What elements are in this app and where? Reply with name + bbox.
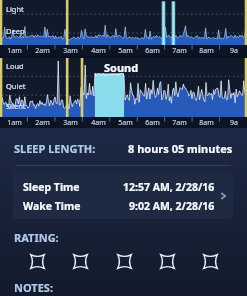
staticText: Silent	[6, 101, 26, 111]
staticText: 7am	[172, 118, 187, 128]
staticText: 3am	[63, 46, 78, 56]
staticText: 8am	[199, 118, 214, 128]
staticText: 6am	[145, 46, 160, 56]
button[interactable]: Rate 4 of 5	[156, 250, 178, 272]
staticText: 4am	[91, 118, 106, 128]
staticText: 8 hours 05 minutes	[128, 141, 233, 156]
staticText: Loud	[6, 61, 24, 71]
staticText: 7am	[172, 46, 187, 56]
button[interactable]: Rate 3 of 5	[113, 250, 135, 272]
staticText: 6am	[145, 118, 160, 128]
staticText: Light	[6, 4, 24, 14]
staticText: 2am	[35, 118, 50, 128]
button[interactable]: Rate 1 of 5	[26, 250, 48, 272]
staticText: 1am	[7, 118, 22, 128]
staticText: 5am	[118, 46, 133, 56]
staticText: 2am	[35, 46, 50, 56]
button[interactable]: Rate 2 of 5	[69, 250, 91, 272]
staticText: Sound	[104, 60, 139, 75]
staticText: 5am	[118, 118, 133, 128]
button[interactable]: Sleep Time	[13, 173, 233, 219]
staticText: NOTES:	[14, 280, 53, 295]
staticText: RATING:	[14, 230, 59, 245]
staticText: 1am	[7, 46, 22, 56]
staticText: 9a	[230, 118, 238, 128]
staticText: 12:57 AM, 2/28/16	[123, 180, 215, 194]
staticText: Quiet	[6, 81, 26, 91]
staticText: Sleep Time	[23, 180, 80, 194]
staticText: SLEEP LENGTH:	[14, 141, 96, 156]
button[interactable]: Rate 5 of 5	[199, 250, 221, 272]
staticText: Deep	[6, 26, 25, 36]
staticText: 3am	[63, 118, 78, 128]
staticText: Wake Time	[23, 199, 81, 213]
staticText: 9a	[230, 46, 238, 56]
staticText: 4am	[91, 46, 106, 56]
button[interactable]: SLEEP LENGTH:	[14, 141, 233, 156]
staticText: 9:02 AM, 2/28/16	[129, 199, 215, 213]
other: Show sleep details	[218, 191, 228, 201]
staticText: 8am	[199, 46, 214, 56]
